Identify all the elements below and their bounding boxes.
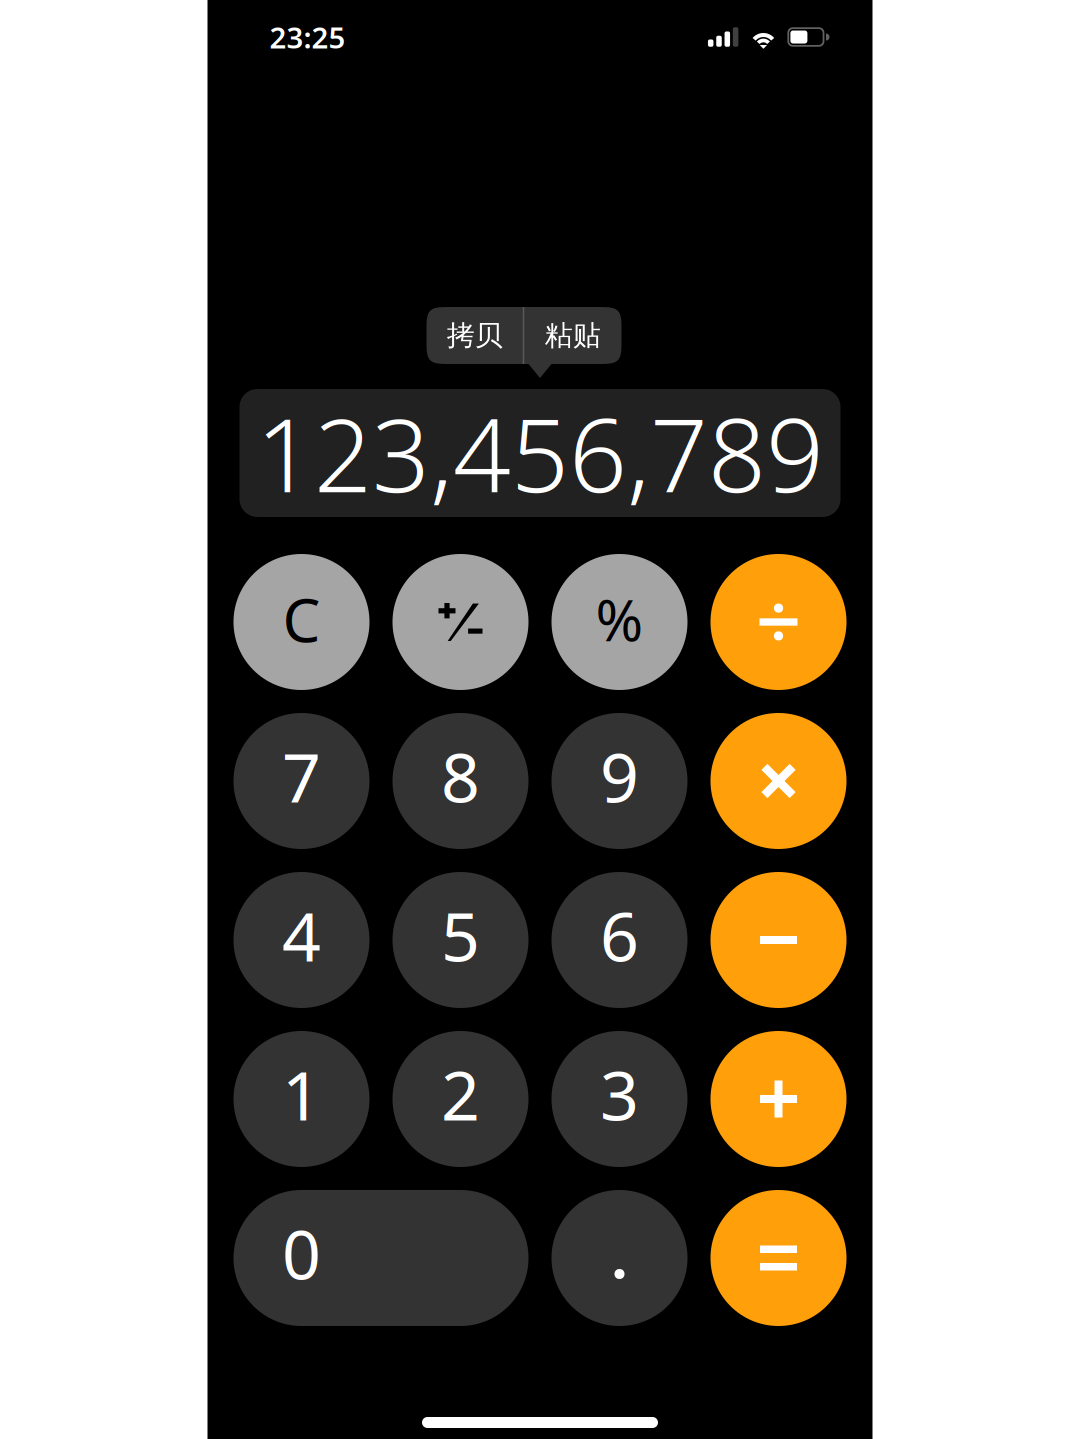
staticText: 1	[282, 1049, 321, 1139]
staticText: 4	[282, 890, 321, 980]
button[interactable]: C	[233, 554, 369, 690]
button[interactable]: 0	[233, 1190, 528, 1326]
button[interactable]: 1	[233, 1031, 369, 1167]
button[interactable]: 8	[392, 713, 528, 849]
button[interactable]: 3	[551, 1031, 687, 1167]
staticText: 0	[282, 1208, 321, 1298]
staticText: 123,456,789	[256, 386, 824, 520]
button[interactable]: Decimal point	[551, 1190, 687, 1326]
button[interactable]: Equals	[710, 1190, 846, 1326]
staticText: 3	[600, 1049, 639, 1139]
staticText: 8	[441, 731, 480, 821]
staticText: 粘贴	[545, 318, 601, 353]
staticText: 9	[600, 731, 639, 821]
button[interactable]: Multiply	[710, 713, 846, 849]
button[interactable]: 粘贴	[524, 307, 621, 364]
button[interactable]: 9	[551, 713, 687, 849]
staticText: 6	[600, 890, 639, 980]
button[interactable]: 6	[551, 872, 687, 1008]
button[interactable]: Toggle sign	[392, 554, 528, 690]
button[interactable]: 4	[233, 872, 369, 1008]
button[interactable]: Plus	[710, 1031, 846, 1167]
button[interactable]: 5	[392, 872, 528, 1008]
button[interactable]: 7	[233, 713, 369, 849]
button[interactable]: 拷贝	[427, 307, 523, 364]
staticText: 23:25	[269, 17, 345, 56]
staticText: 拷贝	[447, 318, 503, 353]
button[interactable]: Minus	[710, 872, 846, 1008]
staticText: %	[595, 581, 643, 657]
staticText: 7	[282, 731, 321, 821]
button[interactable]: %	[551, 554, 687, 690]
staticText: 5	[441, 890, 480, 980]
button[interactable]: 2	[392, 1031, 528, 1167]
button[interactable]: Divide	[710, 554, 846, 690]
staticText: C	[282, 579, 320, 659]
staticText: 2	[441, 1049, 480, 1139]
